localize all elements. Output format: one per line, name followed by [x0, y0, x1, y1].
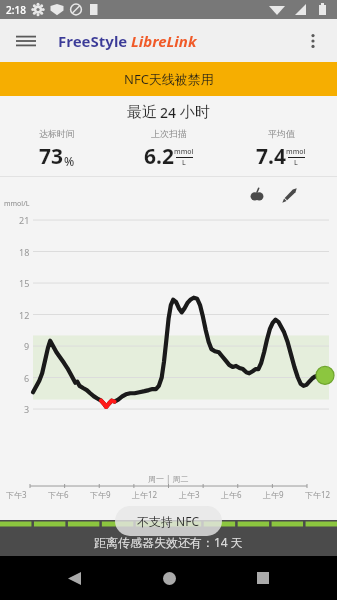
button[interactable]: Menu [8, 23, 44, 59]
button[interactable]: 上次扫描 [113, 128, 225, 171]
staticText: 7.4 [256, 142, 286, 171]
staticText: 上午6 [221, 489, 242, 500]
staticText: 下午9 [90, 489, 111, 500]
button[interactable]: Recent apps [243, 558, 283, 598]
staticText: 上午9 [263, 489, 284, 500]
staticText: 2:18 [6, 3, 26, 17]
staticText: LibreLink [131, 31, 197, 51]
staticText: 不支持 NFC [137, 513, 200, 529]
staticText: 周一 | 周二 [148, 473, 189, 484]
staticText: 21 [19, 214, 30, 226]
staticText: 达标时间 [39, 128, 75, 139]
staticText: 24 [160, 103, 177, 122]
staticText: 6.2 [144, 142, 174, 171]
button[interactable]: Home [149, 558, 189, 598]
staticText: mmol/L [4, 199, 30, 209]
button[interactable]: 平均值 [225, 128, 337, 171]
staticText: 6 [24, 372, 30, 384]
staticText: 3 [24, 403, 30, 415]
staticText: NFC天线被禁用 [124, 70, 214, 88]
staticText: FreeStyle [58, 31, 128, 51]
staticText: 下午12 [305, 489, 331, 500]
staticText: 18 [19, 246, 30, 258]
button[interactable]: 达标时间 [0, 128, 113, 171]
staticText: L [294, 158, 298, 168]
staticText: 上午12 [132, 489, 158, 500]
staticText: 上午3 [179, 489, 200, 500]
staticText: mmol [286, 147, 306, 157]
staticText: 9 [24, 340, 30, 352]
staticText: L [182, 158, 186, 168]
staticText: mmol [174, 147, 194, 157]
staticText: 最近 [127, 103, 157, 122]
staticText: 小时 [180, 103, 210, 122]
button[interactable]: 距离传感器失效还有：14 天 [0, 528, 337, 556]
button[interactable]: Back [54, 558, 94, 598]
button[interactable]: Food log [245, 183, 269, 207]
staticText: 12 [19, 309, 30, 321]
staticText: 距离传感器失效还有：14 天 [94, 534, 243, 550]
button[interactable]: Insulin log [277, 183, 301, 207]
staticText: 下午3 [6, 489, 27, 500]
staticText: 15 [19, 277, 30, 289]
button[interactable]: NFC天线被禁用 [0, 62, 337, 96]
staticText: 上次扫描 [151, 128, 187, 139]
staticText: % [64, 153, 75, 169]
staticText: 平均值 [268, 128, 295, 139]
staticText: 下午6 [48, 489, 69, 500]
button[interactable]: More options [295, 23, 331, 59]
staticText: 73 [39, 142, 64, 171]
